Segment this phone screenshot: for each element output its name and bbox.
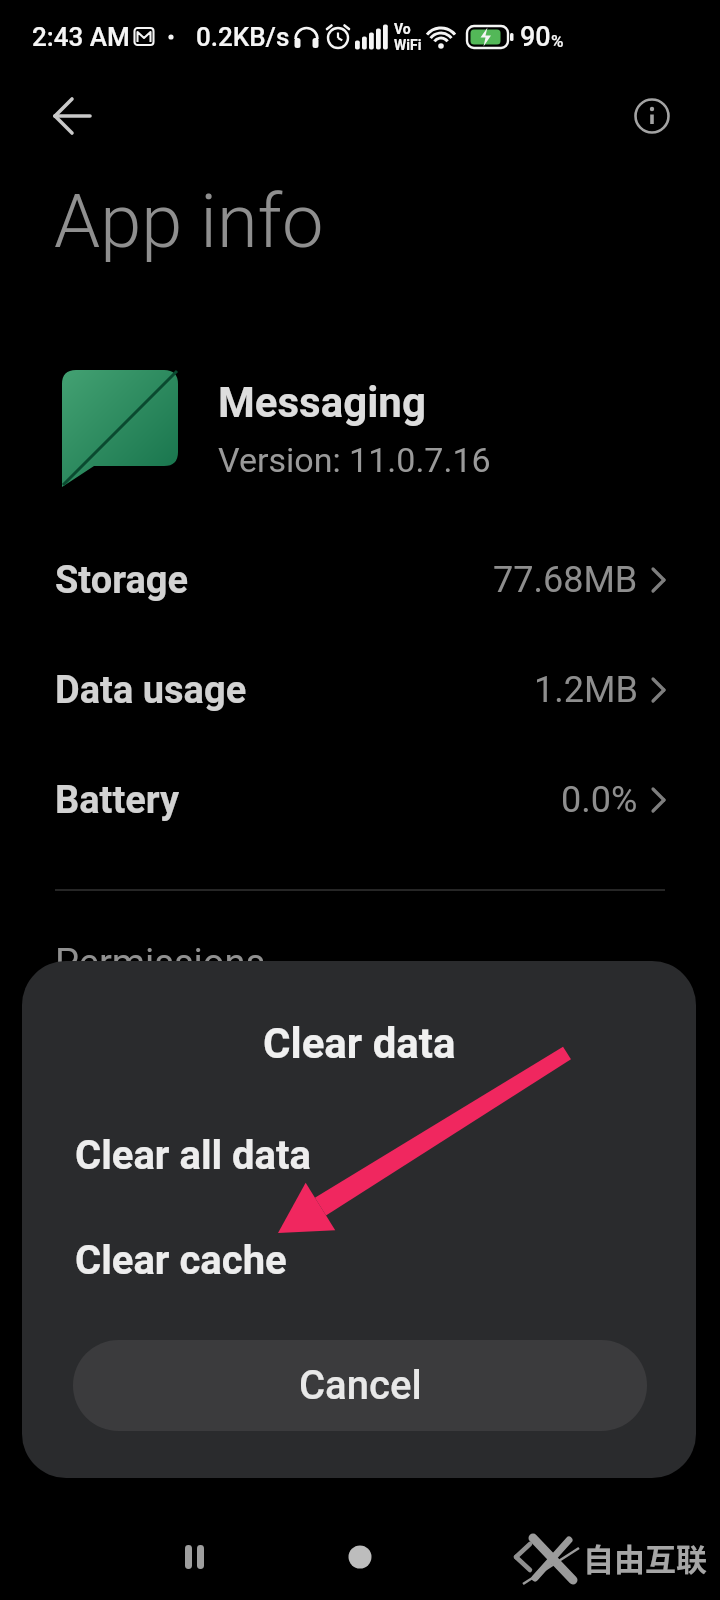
staticText: Storage [55,558,189,603]
staticText: 自由互联 [583,1535,707,1580]
button[interactable] [172,1534,218,1580]
staticText: 0.0% [561,779,638,821]
staticText: 1.2MB [534,669,638,711]
button[interactable] [500,1534,546,1580]
staticText: Data usage [55,668,247,713]
button[interactable]: Data usage [0,635,720,745]
button[interactable]: Battery [0,745,720,855]
button[interactable] [622,88,682,144]
staticText: Clear cache [75,1237,287,1284]
staticText: 90 [520,21,551,53]
button[interactable] [40,88,104,144]
button[interactable]: Storage [0,525,720,635]
staticText: App info [54,178,324,265]
staticText: % [551,31,564,51]
staticText: Clear all data [75,1132,312,1179]
staticText: Battery [55,778,180,823]
button[interactable]: Cancel [73,1340,647,1431]
staticText: Cancel [299,1362,422,1409]
button[interactable]: Clear all data [22,1115,696,1195]
staticText: Permissions [55,941,266,986]
staticText: 2:43 AM [32,22,130,52]
staticText: Vo [394,21,411,37]
staticText: 77.68MB [493,559,638,601]
staticText: Version: 11.0.7.16 [218,440,491,480]
staticText: Clear data [263,1019,456,1068]
staticText: Messaging [218,378,426,427]
button[interactable] [337,1534,383,1580]
button[interactable]: Clear cache [22,1220,696,1300]
staticText: WiFi [394,37,422,53]
staticText: 0.2KB/s [196,22,290,52]
